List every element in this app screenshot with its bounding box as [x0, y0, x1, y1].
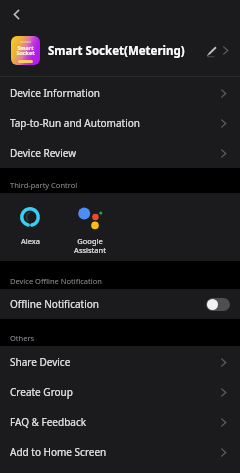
staticText: Add to Home Screen	[10, 445, 107, 459]
staticText: Tap-to-Run and Automation	[10, 116, 140, 130]
staticText: Offline Notification	[10, 297, 99, 311]
button[interactable]: Create Group	[0, 377, 240, 407]
staticText: Others	[10, 333, 35, 343]
button[interactable]: Rename device	[202, 42, 220, 60]
button[interactable]: Back	[3, 1, 29, 27]
staticText: Device Offline Notification	[10, 276, 102, 286]
staticText: Device Review	[10, 146, 77, 160]
staticText: Create Group	[10, 385, 73, 399]
button[interactable]: FAQ & Feedback	[0, 407, 240, 437]
staticText: Third-party Control	[10, 180, 78, 190]
button[interactable]: Tap-to-Run and Automation	[0, 108, 240, 138]
staticText: Share Device	[10, 355, 71, 369]
button[interactable]: Share Device	[0, 347, 240, 377]
staticText: Alexa	[21, 236, 40, 246]
button[interactable]: Device Information	[0, 78, 240, 108]
button[interactable]: Device Review	[0, 138, 240, 168]
button[interactable]: Offline Notification	[0, 289, 240, 319]
staticText: FAQ & Feedback	[10, 415, 87, 429]
staticText: Google Assistant	[74, 236, 106, 255]
button[interactable]: Offline notification toggle	[206, 298, 230, 311]
button[interactable]: Add to Home Screen	[0, 437, 240, 467]
button[interactable]: Alexa	[0, 193, 60, 246]
staticText: Device Information	[10, 86, 101, 100]
button[interactable]: Smart Socket	[0, 28, 240, 73]
button[interactable]: Google Assistant	[60, 193, 120, 255]
staticText: Smart Socket(Metering)	[48, 43, 185, 59]
staticText: Smart Socket	[16, 44, 35, 57]
